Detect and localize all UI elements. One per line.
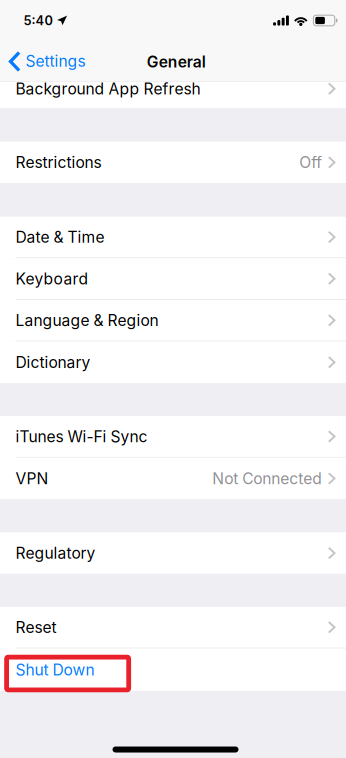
button[interactable]: Language & Region: [0, 300, 346, 341]
staticText: Reset: [15, 618, 56, 637]
button[interactable]: Background App Refresh: [0, 82, 346, 108]
staticText: iTunes Wi-Fi Sync: [15, 427, 147, 446]
staticText: Settings: [25, 52, 85, 70]
button[interactable]: iTunes Wi-Fi Sync: [0, 416, 346, 458]
staticText: Off: [299, 153, 322, 172]
staticText: Keyboard: [15, 269, 88, 288]
staticText: 5:40: [23, 13, 52, 28]
staticText: Dictionary: [15, 353, 90, 372]
button[interactable]: Shut Down: [0, 648, 346, 691]
staticText: VPN: [15, 469, 48, 488]
staticText: General: [147, 52, 206, 71]
staticText: Language & Region: [15, 311, 158, 330]
button[interactable]: Settings: [0, 43, 85, 79]
staticText: Background App Refresh: [15, 79, 200, 98]
staticText: Not Connected: [212, 469, 322, 488]
button[interactable]: Restrictions: [0, 142, 346, 183]
button[interactable]: VPN: [0, 458, 346, 499]
staticText: Regulatory: [15, 544, 95, 563]
button[interactable]: Dictionary: [0, 341, 346, 383]
staticText: Date & Time: [15, 228, 104, 247]
button[interactable]: Keyboard: [0, 258, 346, 300]
staticText: Shut Down: [15, 660, 94, 679]
button[interactable]: Date & Time: [0, 217, 346, 258]
button[interactable]: Regulatory: [0, 532, 346, 574]
button[interactable]: Reset: [0, 607, 346, 648]
staticText: Restrictions: [15, 153, 101, 172]
